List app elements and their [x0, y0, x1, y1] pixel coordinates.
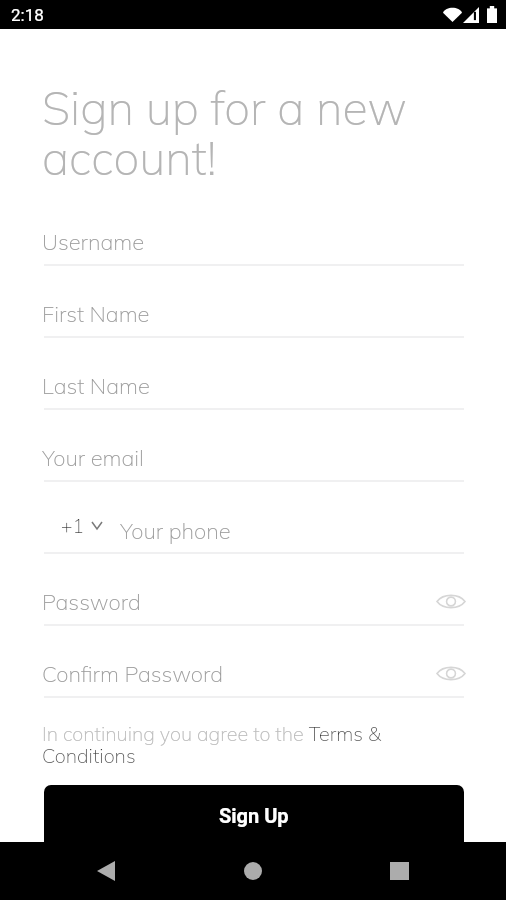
staticText: Last Name [42, 372, 150, 400]
button[interactable]: Username [44, 217, 464, 265]
button[interactable]: Show password [434, 656, 468, 690]
other: Signal [463, 7, 479, 23]
other: Battery [487, 6, 497, 23]
staticText: Sign Up [219, 804, 289, 827]
staticText: Password [42, 588, 428, 616]
button[interactable]: Your email [44, 433, 464, 481]
button[interactable]: +1 [54, 510, 109, 542]
button[interactable]: First Name [44, 289, 464, 337]
button[interactable]: Show password [434, 584, 468, 618]
button[interactable]: Home [229, 847, 277, 895]
other: Wifi [443, 6, 462, 22]
staticText: Your phone [120, 517, 231, 545]
staticText: 2:18 [11, 5, 44, 25]
button[interactable]: Last Name [44, 361, 464, 409]
staticText: Sign up for a new account! [42, 78, 472, 187]
staticText: First Name [42, 300, 150, 328]
staticText: Your email [42, 444, 144, 472]
button[interactable]: Back [82, 847, 130, 895]
button[interactable]: Sign Up [44, 785, 464, 849]
staticText: +1 [61, 514, 84, 538]
staticText: Username [42, 228, 145, 256]
staticText: Confirm Password [42, 660, 428, 688]
button[interactable]: Recents [375, 847, 423, 895]
staticText: In continuing you agree to the Terms & C… [42, 721, 390, 768]
